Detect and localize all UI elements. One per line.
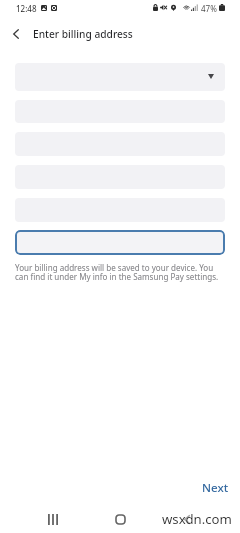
button[interactable]: Next [196,476,235,500]
button[interactable]: Back [2,20,30,48]
button[interactable]: Home [103,506,137,532]
button[interactable] [15,63,225,91]
staticText: wsxdn.com [162,510,232,528]
staticText: Next [202,480,229,496]
button[interactable]: Recent apps [36,506,70,532]
staticText: 12:48 [16,3,37,14]
button[interactable]: Back [170,506,204,532]
staticText: Enter billing address [33,27,133,41]
staticText: 47% [201,3,217,14]
button[interactable] [15,230,225,255]
staticText: Your billing address will be saved to yo… [15,262,221,283]
